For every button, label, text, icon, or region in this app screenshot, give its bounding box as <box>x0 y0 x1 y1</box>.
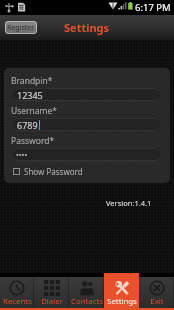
staticText: Version:1.4.1 <box>106 198 152 208</box>
staticText: Username* <box>11 105 58 117</box>
staticText: 6:17 PM <box>135 1 171 14</box>
staticText: Settings <box>64 20 110 35</box>
staticText: Register <box>7 23 35 33</box>
button[interactable]: Recents <box>0 277 34 310</box>
staticText: Brandpin* <box>11 75 53 87</box>
staticText: Dialer <box>41 296 63 307</box>
button[interactable]: Settings <box>104 273 139 310</box>
staticText: 12345 <box>17 89 43 101</box>
staticText: 6789 <box>17 119 38 131</box>
button[interactable]: Show Password <box>13 166 83 176</box>
button[interactable]: Exit <box>139 277 174 310</box>
staticText: Contacts <box>71 296 103 307</box>
button[interactable] <box>11 148 162 161</box>
staticText: Recents <box>3 296 32 307</box>
button[interactable]: Contacts <box>69 277 104 310</box>
button[interactable]: 12345 <box>11 88 162 101</box>
button[interactable]: Register <box>5 21 37 34</box>
button[interactable]: 6789 <box>11 118 162 131</box>
button[interactable]: Dialer <box>34 277 69 310</box>
staticText: Show Password <box>24 166 83 176</box>
staticText: Password* <box>11 135 55 147</box>
staticText: Settings <box>107 296 137 307</box>
staticText: Exit <box>150 296 164 307</box>
